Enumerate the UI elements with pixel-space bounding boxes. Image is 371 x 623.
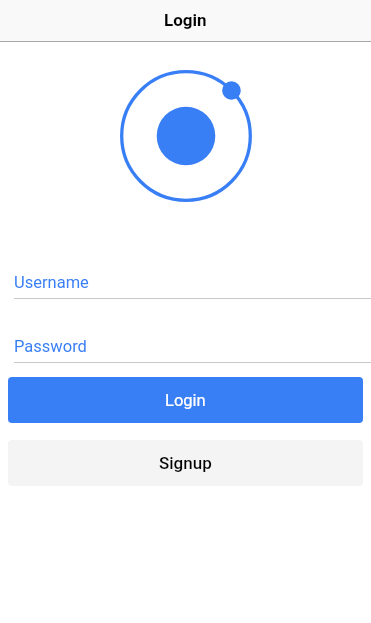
button[interactable]: Login — [8, 377, 363, 423]
button[interactable]: Password — [0, 331, 371, 363]
staticText: Login — [164, 10, 207, 30]
staticText: Password — [14, 337, 87, 356]
other: Ionic logo — [118, 68, 254, 204]
button[interactable]: Signup — [8, 440, 363, 486]
button[interactable]: Username — [0, 267, 371, 299]
staticText: Username — [14, 273, 89, 292]
staticText: Login — [165, 391, 206, 410]
staticText: Signup — [159, 453, 212, 473]
